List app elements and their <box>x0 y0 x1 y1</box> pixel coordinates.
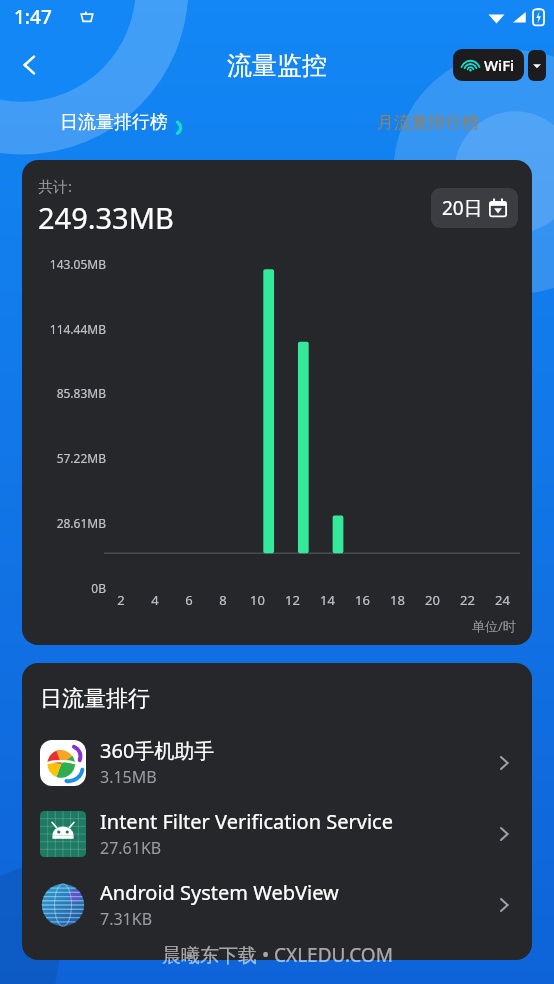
staticText: 7.31KB <box>100 908 153 930</box>
staticText: 143.05MB <box>22 256 106 272</box>
staticText: 22 <box>450 591 485 609</box>
staticText: 2 <box>104 591 138 609</box>
button[interactable]: Intent Filter Verification Service <box>22 798 532 869</box>
staticText: 10 <box>240 591 275 609</box>
staticText: 20 <box>415 591 450 609</box>
staticText: 共计: <box>38 176 73 196</box>
staticText: 4 <box>138 591 172 609</box>
staticText: 360手机助手 <box>100 737 215 764</box>
staticText: 20日 <box>442 195 483 221</box>
staticText: 单位/时 <box>472 617 516 635</box>
staticText: 流量监控 <box>227 50 327 81</box>
staticText: 85.83MB <box>22 385 106 401</box>
staticText: 28.61MB <box>22 515 106 531</box>
staticText: 249.33MB <box>38 198 174 237</box>
staticText: 0B <box>22 580 106 596</box>
button[interactable]: 月流量排行榜 <box>377 112 479 133</box>
button[interactable]: 日流量排行榜 <box>60 111 182 134</box>
staticText: 1:47 <box>14 4 52 30</box>
staticText: 晨曦东下载 • CXLEDU.COM <box>162 942 393 968</box>
button[interactable]: 20日 <box>431 188 518 228</box>
staticText: 27.61KB <box>100 837 162 859</box>
staticText: 8 <box>206 591 240 609</box>
button[interactable]: Android System WebView <box>22 869 532 940</box>
staticText: 18 <box>380 591 415 609</box>
staticText: 114.44MB <box>22 321 106 337</box>
staticText: WiFi <box>484 55 515 75</box>
staticText: Android System WebView <box>100 879 339 906</box>
staticText: 月流量排行榜 <box>377 112 479 133</box>
staticText: 6 <box>172 591 206 609</box>
staticText: Intent Filter Verification Service <box>100 808 393 835</box>
button[interactable]: More network options <box>528 50 546 81</box>
button[interactable]: Back <box>8 43 52 87</box>
button[interactable]: WiFi <box>453 49 524 81</box>
button[interactable]: 360手机助手 <box>22 727 532 798</box>
staticText: 57.22MB <box>22 450 106 466</box>
staticText: 12 <box>275 591 310 609</box>
staticText: 日流量排行榜 <box>60 111 168 134</box>
staticText: 3.15MB <box>100 766 157 788</box>
staticText: 14 <box>310 591 345 609</box>
staticText: 24 <box>485 591 520 609</box>
staticText: 16 <box>345 591 380 609</box>
staticText: 日流量排行 <box>40 685 150 713</box>
